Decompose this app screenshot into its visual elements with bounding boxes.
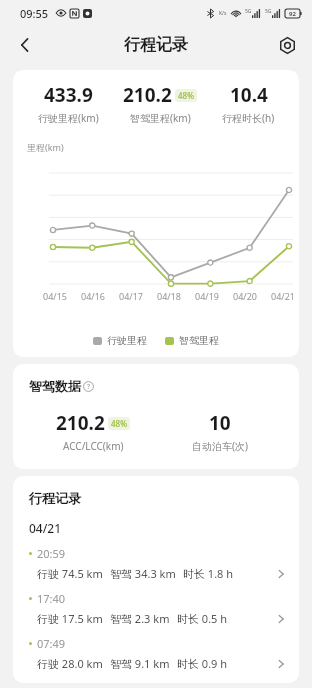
staticText: 04/17 [115,290,147,302]
staticText: 433.9 [44,82,93,108]
staticText: ACC/LCC(km) [63,439,124,453]
staticText: 48% [178,90,194,101]
staticText: 行程记录 [29,490,81,506]
staticText: 时长 0.5 h [177,611,228,626]
staticText: 行驶里程 [107,334,147,347]
button[interactable]: 20:59 [29,546,287,581]
staticText: 里程(km) [27,141,64,153]
staticText: 行程时长(h) [222,111,275,125]
staticText: 04/16 [77,290,109,302]
button[interactable]: Info [83,381,94,392]
staticText: 07:49 [37,636,66,651]
staticText: 智驾 34.3 km [110,566,176,581]
staticText: 智驾 9.1 km [110,656,170,671]
staticText: 04/15 [39,290,71,302]
staticText: 智驾里程 [179,334,219,347]
staticText: 时长 0.9 h [177,656,228,671]
staticText: 智驾 2.3 km [110,611,170,626]
staticText: 48% [111,418,127,429]
staticText: 09:55 [20,6,49,21]
staticText: 智驾里程(km) [130,111,191,125]
staticText: 92 [289,10,296,18]
staticText: 自动泊车(次) [192,439,248,453]
staticText: 04/21 [267,290,299,302]
staticText: K/s [219,10,227,17]
button[interactable]: Back [8,28,42,62]
staticText: 行程记录 [124,35,188,55]
staticText: 20:59 [37,546,66,561]
staticText: 04/20 [229,290,261,302]
staticText: ? [87,382,91,392]
staticText: 210.2 [56,410,105,436]
staticText: 04/18 [153,290,185,302]
staticText: 行驶 74.5 km [37,566,103,581]
staticText: 行驶 17.5 km [37,611,103,626]
button[interactable]: Settings [270,28,304,62]
button[interactable]: 17:40 [29,591,287,626]
staticText: 时长 1.8 h [183,566,234,581]
staticText: 智驾数据 [29,378,81,394]
staticText: 17:40 [37,591,66,606]
staticText: 10 [209,410,231,436]
staticText: 5G [245,8,252,15]
staticText: 5G [265,8,272,15]
staticText: 10.4 [230,82,268,108]
staticText: 行驶里程(km) [38,111,99,125]
staticText: 210.2 [123,82,172,108]
staticText: 04/21 [29,520,62,536]
staticText: 04/19 [191,290,223,302]
button[interactable]: 07:49 [29,636,287,671]
staticText: 行驶 28.0 km [37,656,103,671]
